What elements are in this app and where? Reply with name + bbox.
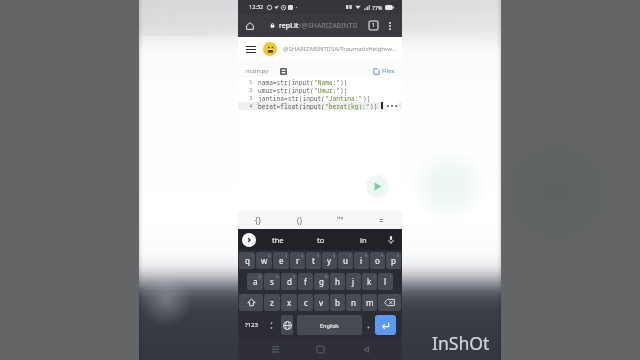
staticText: j	[352, 276, 355, 287]
button[interactable]: q	[239, 252, 255, 269]
button[interactable]: j	[346, 273, 361, 290]
staticText: f	[304, 276, 307, 287]
staticText: k	[367, 276, 372, 287]
staticText: umur=str(input(	[258, 86, 314, 94]
button[interactable]: d	[281, 273, 297, 290]
staticText: p	[391, 255, 396, 266]
staticText: x	[287, 297, 292, 308]
staticText: s	[270, 276, 274, 287]
button[interactable]: p	[386, 252, 401, 269]
staticText: nama=str(input(	[258, 78, 314, 86]
button[interactable]: Back	[357, 340, 375, 358]
staticText: repl.it	[279, 21, 299, 31]
staticText: 7	[349, 253, 352, 258]
staticText: Files	[382, 67, 395, 75]
button[interactable]: the	[256, 229, 299, 250]
staticText: "Umur:"	[314, 86, 340, 94]
staticText: "Jantina:"	[325, 94, 363, 102]
staticText: &	[325, 274, 328, 279]
staticText: #	[276, 274, 279, 279]
staticText: r	[296, 255, 300, 266]
staticText: _	[310, 274, 312, 279]
button[interactable]: e	[273, 252, 289, 269]
staticText: 3	[285, 253, 288, 258]
button[interactable]: y	[322, 252, 337, 269]
staticText: 4	[249, 102, 253, 110]
button[interactable]: Backspace	[378, 294, 401, 311]
button[interactable]: o	[370, 252, 385, 269]
button[interactable]: Tabs	[367, 19, 380, 32]
button[interactable]: ""	[320, 211, 361, 229]
button[interactable]: b	[330, 294, 345, 311]
button[interactable]: Voice input	[385, 234, 397, 246]
staticText: 4	[301, 253, 304, 258]
staticText: ))	[340, 86, 348, 94]
button[interactable]: m	[362, 294, 377, 311]
button[interactable]: Run	[366, 175, 389, 198]
staticText: (	[374, 274, 376, 279]
button[interactable]: to	[299, 229, 342, 250]
button[interactable]: Home	[242, 18, 258, 34]
staticText: 77%	[372, 4, 383, 11]
button[interactable]: Shift	[239, 294, 263, 311]
button[interactable]: Period	[363, 315, 374, 335]
staticText: c	[304, 297, 308, 308]
button[interactable]: Enter	[375, 315, 396, 335]
button[interactable]: ()	[279, 211, 320, 229]
button[interactable]: Emoji	[265, 315, 277, 335]
staticText: 3	[249, 94, 253, 102]
staticText: w	[261, 255, 268, 266]
button[interactable]: i	[354, 252, 369, 269]
button[interactable]: r	[290, 252, 305, 269]
button[interactable]: Recents	[266, 340, 284, 358]
button[interactable]: More	[384, 101, 399, 110]
staticText: jantina=str(input(	[258, 94, 325, 102]
staticText: i	[360, 255, 363, 266]
button[interactable]: x	[281, 294, 297, 311]
button[interactable]: h	[330, 273, 345, 290]
button[interactable]: Language	[278, 315, 296, 335]
staticText: ()	[297, 215, 302, 226]
button[interactable]: ?123	[239, 315, 264, 335]
staticText: 0	[397, 253, 400, 258]
button[interactable]: l	[378, 273, 393, 290]
staticText: to	[317, 235, 325, 245]
staticText: a	[253, 276, 258, 287]
staticText: ))	[340, 78, 348, 86]
button[interactable]: More options	[384, 20, 396, 32]
button[interactable]: g	[314, 273, 329, 290]
button[interactable]: w	[256, 252, 272, 269]
button[interactable]: s	[264, 273, 280, 290]
button[interactable]: English	[297, 315, 362, 335]
staticText: e	[279, 255, 284, 266]
button[interactable]: c	[298, 294, 313, 311]
staticText: u	[343, 255, 348, 266]
staticText: {}	[255, 215, 262, 226]
button[interactable]: v	[314, 294, 329, 311]
staticText: ))	[370, 102, 378, 110]
button[interactable]: n	[346, 294, 361, 311]
staticText: ))	[363, 94, 371, 102]
button[interactable]: More suggestions	[242, 233, 256, 247]
button[interactable]: a	[247, 273, 263, 290]
button[interactable]: Home	[311, 340, 329, 358]
staticText: t	[312, 255, 315, 266]
button[interactable]: Menu	[244, 42, 258, 56]
staticText: o	[375, 255, 380, 266]
button[interactable]: =	[361, 211, 402, 229]
staticText: )	[390, 274, 392, 279]
staticText: main.py	[246, 67, 269, 75]
staticText: $	[293, 274, 296, 279]
button[interactable]: in	[342, 229, 385, 250]
button[interactable]: t	[306, 252, 321, 269]
staticText: in	[360, 235, 367, 245]
staticText: ""	[337, 215, 344, 226]
button[interactable]: z	[264, 294, 280, 311]
staticText: 9	[381, 253, 384, 258]
button[interactable]: u	[338, 252, 353, 269]
button[interactable]: f	[298, 273, 313, 290]
button[interactable]: k	[362, 273, 377, 290]
button[interactable]: {}	[238, 211, 279, 229]
staticText: 6	[333, 253, 336, 258]
staticText: the	[272, 235, 284, 245]
